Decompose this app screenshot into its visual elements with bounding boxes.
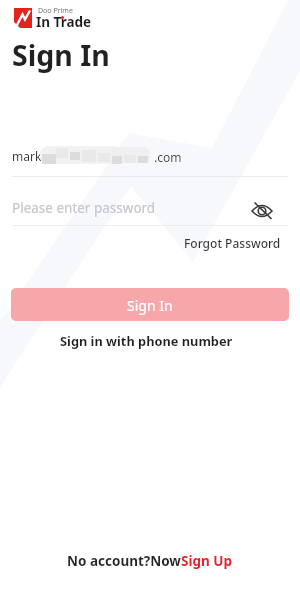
staticText: Sign In (12, 36, 110, 75)
staticText: .com (154, 149, 182, 165)
staticText: mark (12, 148, 42, 164)
staticText: In Trade (36, 13, 92, 31)
staticText: No account?Now (67, 552, 181, 570)
staticText: Sign Up (181, 552, 233, 570)
staticText: Sign in with phone number (60, 332, 233, 349)
button[interactable]: Sign in with phone number (56, 328, 237, 353)
staticText: Forgot Password (184, 235, 281, 251)
staticText: Sign In (127, 296, 173, 315)
button[interactable]: Please enter password (0, 194, 300, 225)
staticText: Doo Prime (38, 6, 73, 16)
button[interactable]: Sign In (11, 288, 289, 321)
button[interactable]: No account?Now (67, 552, 233, 570)
button[interactable]: Forgot Password (184, 235, 281, 251)
button[interactable] (0, 144, 300, 176)
button[interactable] (251, 200, 273, 220)
staticText: Please enter password (12, 199, 156, 217)
